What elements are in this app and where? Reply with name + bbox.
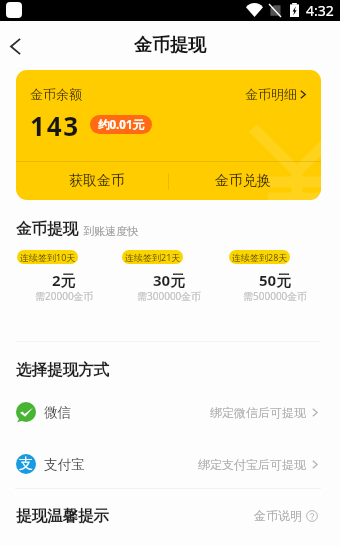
staticText: 选择提现方式 [16,360,109,380]
staticText: 提现温馨提示 [16,506,109,526]
staticText: 连续签到10天 [20,251,76,263]
button[interactable]: 支 [0,438,340,490]
button[interactable]: 连续签到21天 [122,250,183,264]
staticText: 连续签到21天 [125,251,181,263]
staticText: 金币说明 [254,508,302,523]
staticText: 4:32 [306,1,334,20]
button[interactable]: 获取金币 [26,162,168,200]
staticText: 需300000金币 [137,289,202,303]
staticText: 绑定微信后可提现 [210,405,306,420]
staticText: 金币明细 [245,86,297,102]
staticText: 需20000金币 [35,289,94,303]
staticText: 需500000金币 [243,289,308,303]
staticText: 到账速度快 [83,224,138,238]
button[interactable]: 连续签到28天 [229,250,290,264]
button[interactable]: 金币明细 [245,86,306,102]
staticText: 获取金币 [69,172,125,190]
staticText: 支 [19,455,33,473]
staticText: 143 [30,108,81,143]
button[interactable]: Back [0,25,36,67]
staticText: 金币提现 [16,219,78,239]
button[interactable]: 微信 [0,386,340,438]
staticText: 金币提现 [134,34,206,57]
staticText: 支付宝 [44,456,85,473]
button[interactable]: 连续签到10天 [17,250,78,264]
staticText: 连续签到28天 [232,251,288,263]
staticText: 金币余额 [30,86,82,102]
staticText: 金币兑换 [215,172,271,190]
button[interactable]: 金币兑换 [169,162,316,200]
staticText: 微信 [44,404,71,421]
staticText: 30元 [153,270,186,290]
staticText: 50元 [259,270,292,290]
staticText: 绑定支付宝后可提现 [198,457,306,472]
button[interactable]: 金币说明 [254,508,318,523]
staticText: 约0.01元 [98,117,144,133]
staticText: 2元 [52,270,76,290]
